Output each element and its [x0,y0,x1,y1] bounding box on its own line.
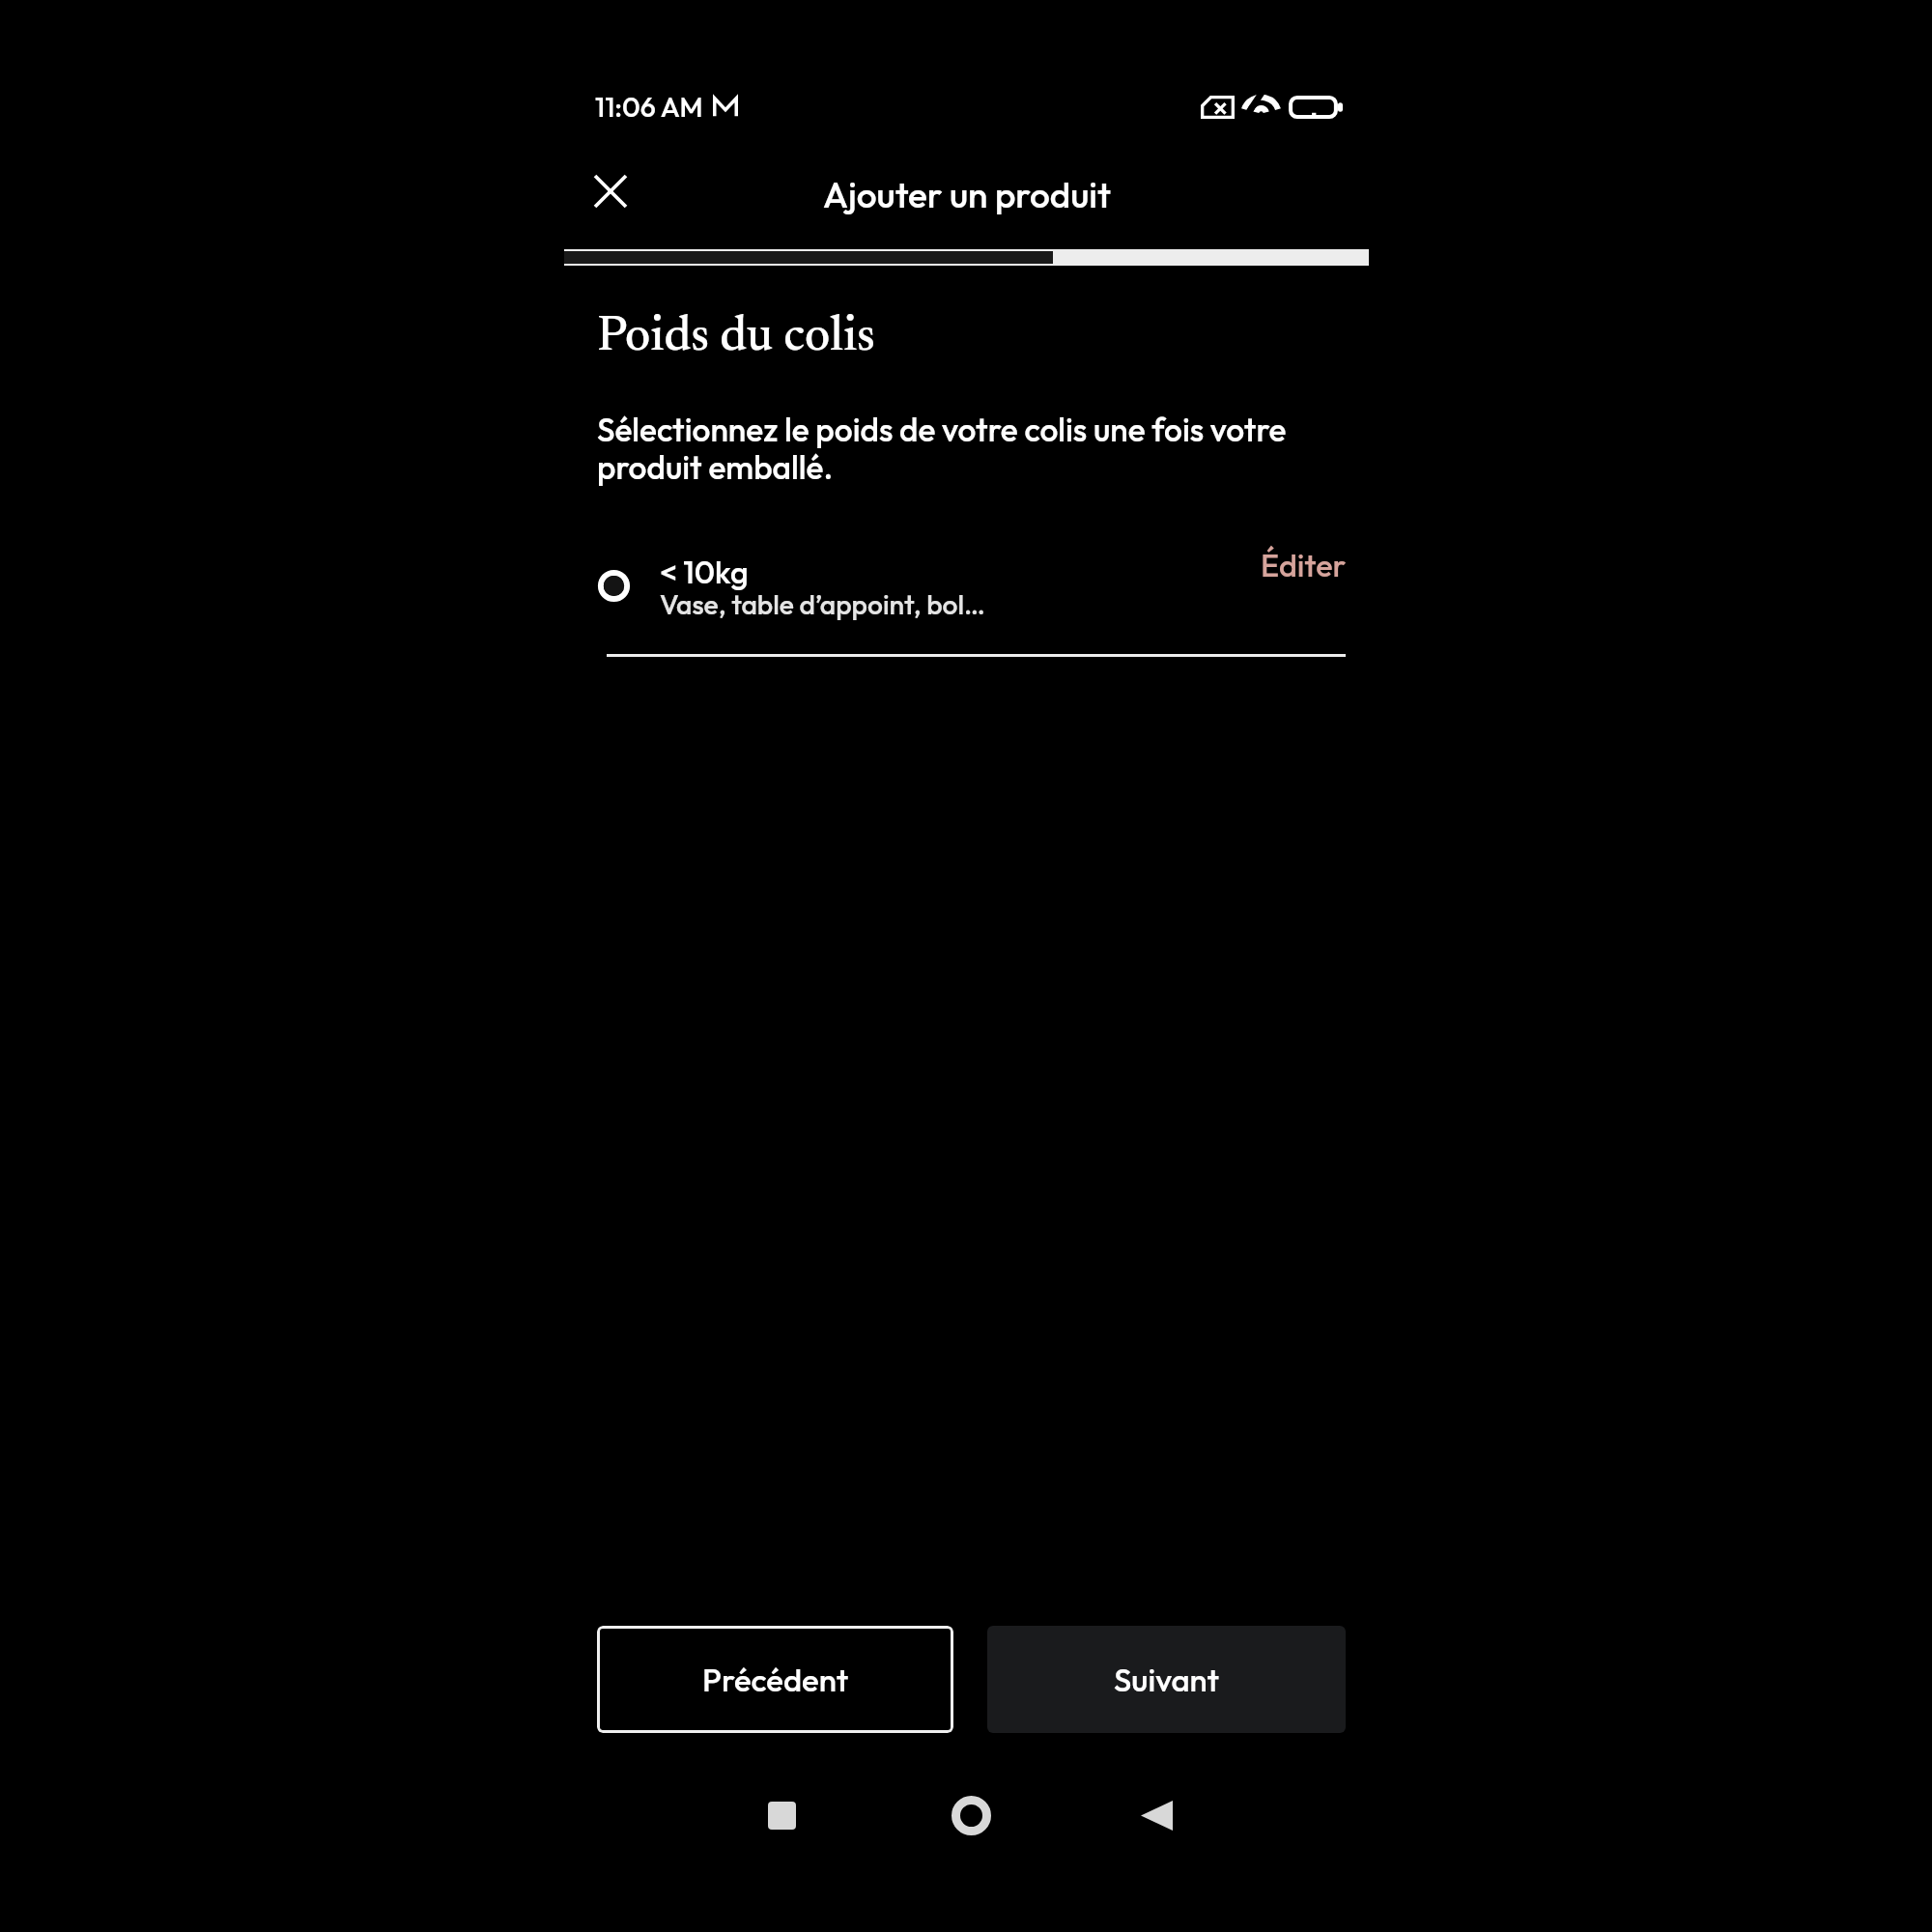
staticText: Éditer [1261,545,1347,584]
staticText: < 10kg [660,552,749,591]
button[interactable]: Accueil [932,1776,1009,1854]
staticText: Sélectionnez le poids de votre colis une… [597,409,1287,449]
button[interactable]: Précédent [597,1626,953,1733]
button[interactable]: Fermer [580,160,641,222]
button[interactable]: Retour [1118,1776,1195,1854]
staticText: Précédent [702,1660,849,1700]
button[interactable]: Éditer [1252,535,1354,593]
staticText: Poids du colis [597,313,875,362]
staticText: 11:06 AM [595,89,703,124]
staticText: Vase, table d’appoint, bol… [660,587,985,622]
button[interactable]: Suivant [987,1626,1346,1733]
button[interactable] [564,537,1066,643]
button[interactable]: Aperçu des applications [743,1776,820,1854]
staticText: Suivant [1114,1660,1220,1700]
staticText: produit emballé. [597,446,834,487]
staticText: Ajouter un produit [823,172,1111,217]
